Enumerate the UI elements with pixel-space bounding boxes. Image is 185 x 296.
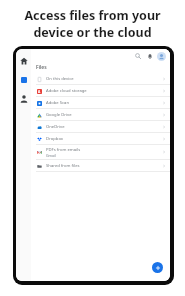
staticText: Dropbox <box>46 136 64 142</box>
button[interactable]: Notifications <box>145 51 155 61</box>
button[interactable]: Add <box>152 262 163 273</box>
staticText: Files <box>36 64 47 71</box>
staticText: OneDrive <box>46 124 65 130</box>
staticText: device or the cloud <box>33 24 152 41</box>
staticText: Adobe cloud storage <box>46 88 87 94</box>
staticText: Gmail <box>46 153 56 158</box>
staticText: Access files from your <box>24 7 161 24</box>
button[interactable]: Files <box>17 73 30 86</box>
button[interactable]: PDFs from emails <box>31 145 170 159</box>
staticText: PDFs from emails <box>46 147 81 153</box>
staticText: Google Drive <box>46 112 72 118</box>
staticText: Shared from files <box>46 163 80 169</box>
button[interactable]: On this device <box>31 73 170 84</box>
staticText: On this device <box>46 76 74 82</box>
button[interactable]: Google Drive <box>31 109 170 120</box>
button[interactable]: Home <box>17 54 30 67</box>
button[interactable]: Profile <box>157 52 166 61</box>
button[interactable]: Search <box>133 51 143 61</box>
button[interactable]: Shared from files <box>31 160 170 171</box>
button[interactable]: Dropbox <box>31 133 170 144</box>
button[interactable]: Adobe Scan <box>31 97 170 108</box>
button[interactable]: OneDrive <box>31 121 170 132</box>
button[interactable]: Account <box>17 92 30 105</box>
button[interactable]: A <box>31 85 170 96</box>
staticText: Adobe Scan <box>46 100 70 106</box>
staticText: A <box>38 90 41 94</box>
